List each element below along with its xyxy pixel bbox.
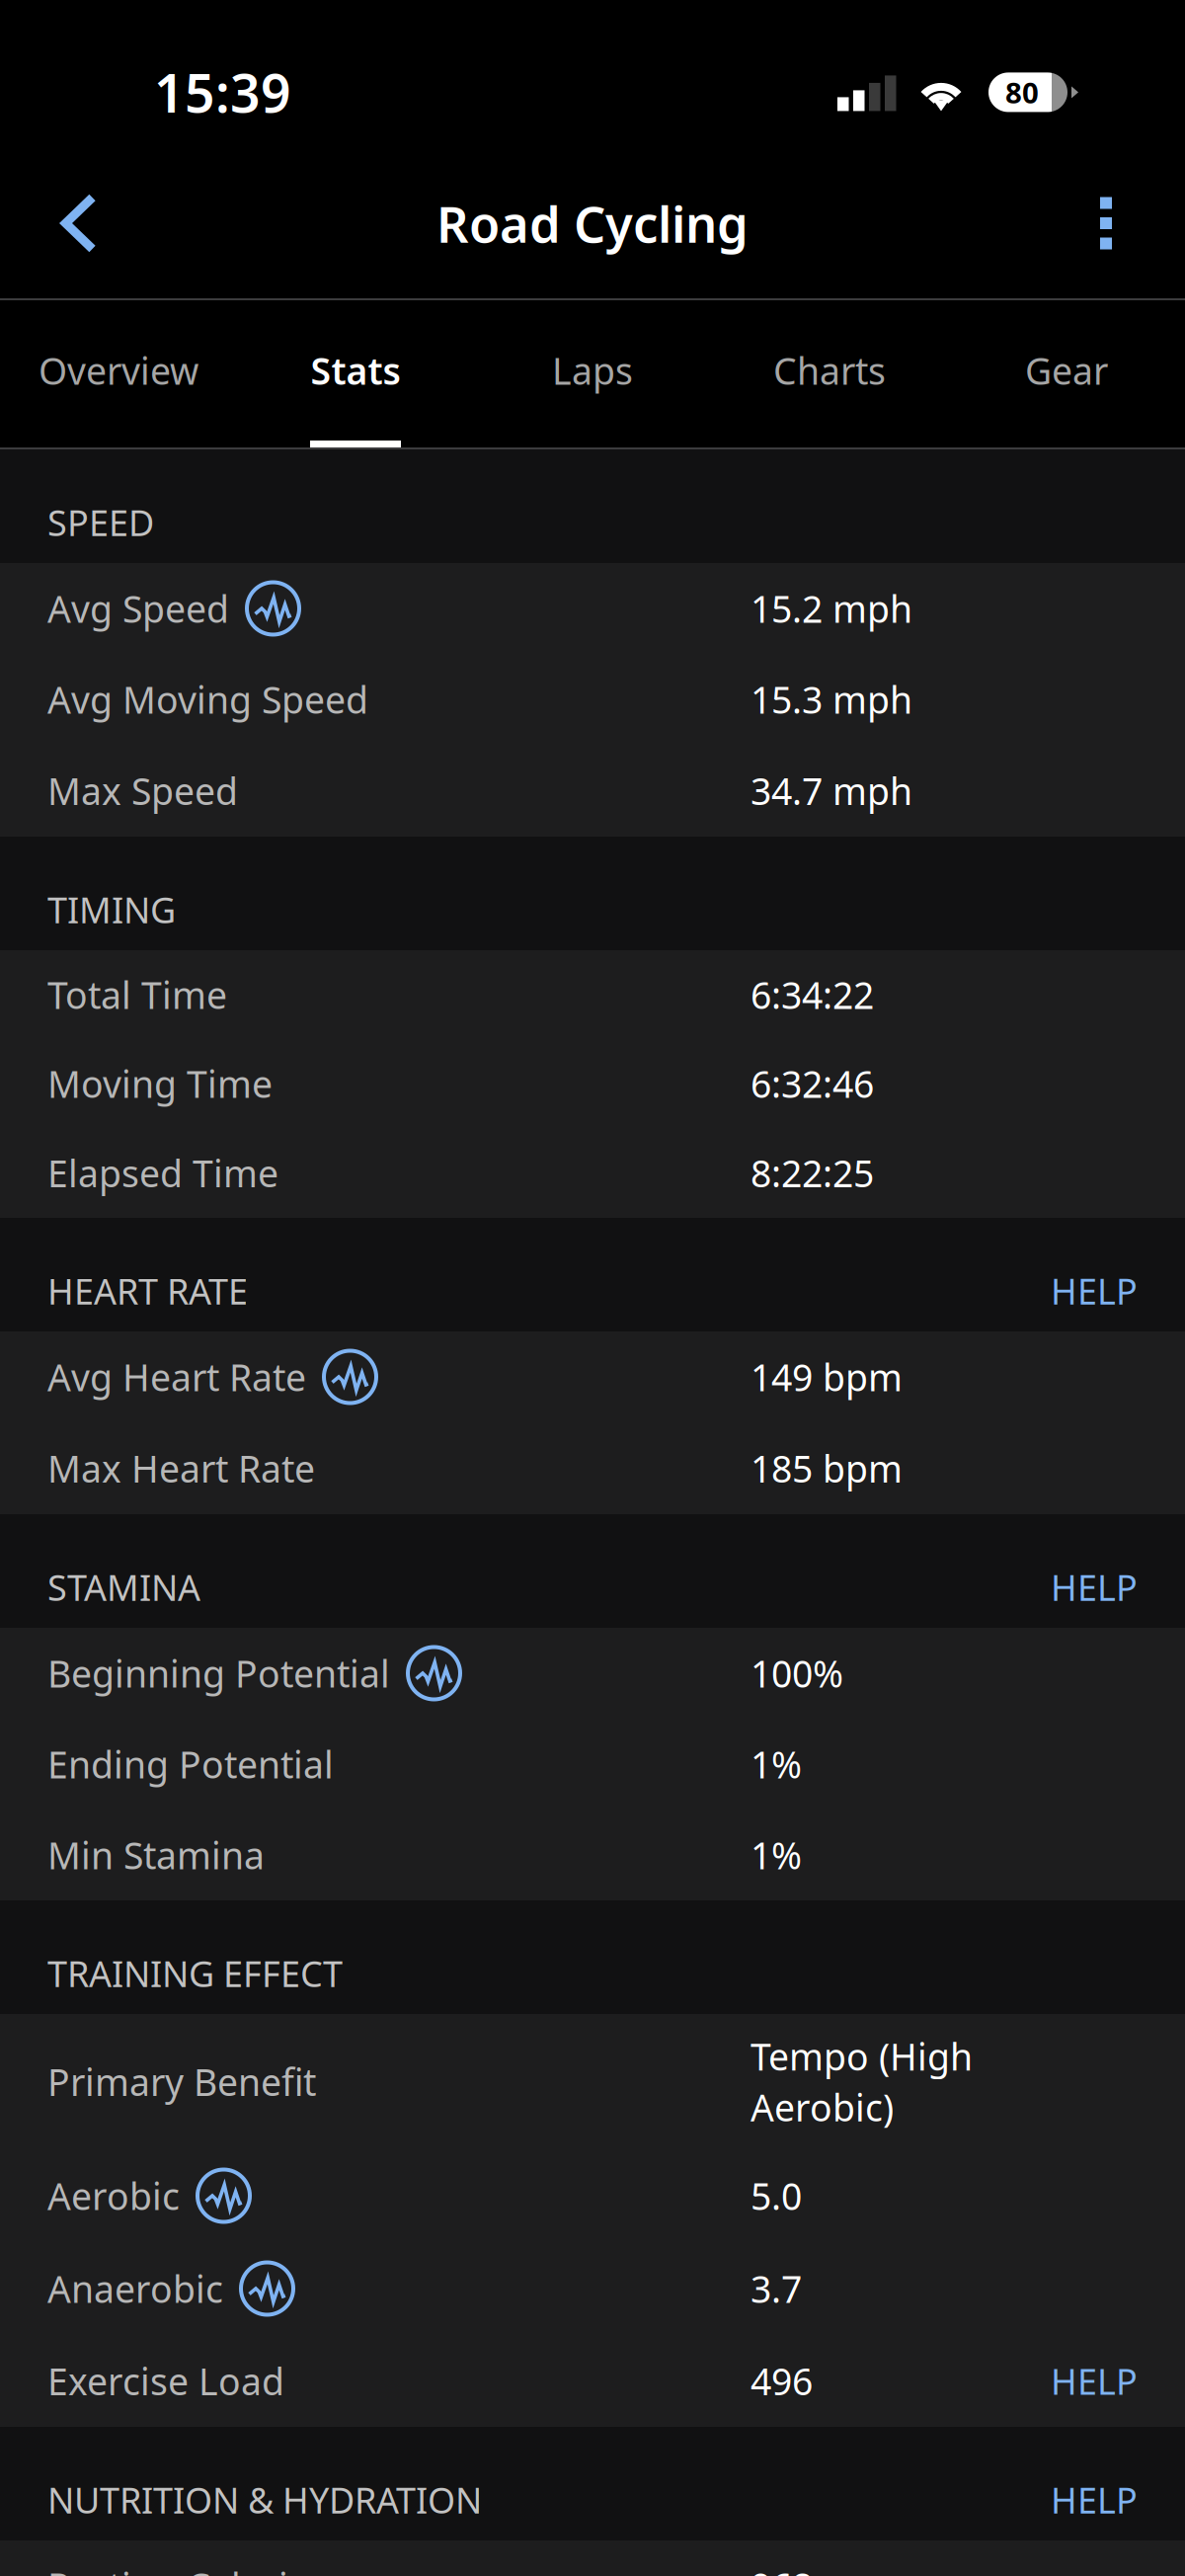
staticText: Total Time	[47, 970, 227, 1019]
button[interactable]: Resting Calories	[0, 2540, 1185, 2576]
staticText: NUTRITION & HYDRATION	[47, 2476, 482, 2523]
staticText: Charts	[773, 346, 886, 395]
staticText: Exercise Load	[47, 2356, 284, 2405]
staticText: HEART RATE	[47, 1267, 248, 1314]
button[interactable]: Back	[20, 164, 138, 282]
button[interactable]: Min Stamina	[0, 1810, 1185, 1900]
staticText: 1%	[750, 1740, 802, 1789]
button[interactable]: Laps	[474, 300, 711, 447]
staticText: HELP	[1051, 2357, 1138, 2405]
staticText: 34.7 mph	[750, 766, 912, 815]
staticText: Laps	[552, 346, 633, 395]
button[interactable]: Primary Benefit	[0, 2014, 1185, 2149]
staticText: 6:32:46	[750, 1059, 874, 1108]
button[interactable]: Avg Speed	[0, 563, 1185, 654]
staticText: Aerobic)	[750, 2083, 894, 2132]
staticText: Aerobic	[47, 2171, 180, 2220]
staticText: TRAINING EFFECT	[47, 1950, 343, 1997]
button[interactable]: Anaerobic	[0, 2242, 1185, 2335]
staticText: 3.7	[750, 2264, 802, 2313]
button[interactable]: Avg Moving Speed	[0, 654, 1185, 745]
staticText: Max Heart Rate	[47, 1444, 315, 1493]
staticText: 15.2 mph	[750, 584, 912, 633]
staticText: 100%	[750, 1649, 843, 1698]
button[interactable]: Max Speed	[0, 745, 1185, 837]
button[interactable]: HELP	[1051, 1267, 1138, 1314]
staticText: Avg Moving Speed	[47, 675, 368, 724]
staticText: 6:34:22	[750, 970, 874, 1019]
staticText: Anaerobic	[47, 2264, 223, 2313]
button[interactable]: Avg Heart Rate	[0, 1331, 1185, 1422]
staticText: Gear	[1025, 346, 1108, 395]
button[interactable]: Elapsed Time	[0, 1128, 1185, 1218]
staticText: 1%	[750, 1830, 802, 1879]
button[interactable]: Max Heart Rate	[0, 1422, 1185, 1514]
staticText: 5.0	[750, 2171, 802, 2220]
staticText: Ending Potential	[47, 1740, 334, 1789]
button[interactable]: Aerobic	[0, 2149, 1185, 2242]
staticText: Stats	[311, 346, 400, 395]
button[interactable]: Total Time	[0, 950, 1185, 1039]
staticText: 149 bpm	[750, 1352, 903, 1401]
button[interactable]: Beginning Potential	[0, 1628, 1185, 1719]
button[interactable]: Gear	[948, 300, 1185, 447]
staticText: SPEED	[47, 499, 154, 546]
staticText: Avg Heart Rate	[47, 1352, 306, 1401]
button[interactable]: HELP	[1051, 2476, 1138, 2523]
button[interactable]: Ending Potential	[0, 1719, 1185, 1810]
staticText: Avg Speed	[47, 584, 229, 633]
staticText: 8:22:25	[750, 1148, 874, 1197]
staticText: Min Stamina	[47, 1830, 265, 1879]
button[interactable]: HELP	[1051, 1564, 1138, 1611]
button[interactable]: Moving Time	[0, 1039, 1185, 1128]
button[interactable]: Exercise Load	[0, 2335, 1185, 2427]
staticText: Road Cycling	[436, 190, 749, 257]
staticText: HELP	[1051, 1267, 1138, 1314]
staticText: TIMING	[47, 886, 176, 933]
button[interactable]: Charts	[711, 300, 948, 447]
staticText: Tempo (High	[750, 2032, 973, 2081]
staticText: Overview	[39, 346, 198, 395]
staticText: 15.3 mph	[750, 675, 912, 724]
button[interactable]: Overview	[0, 300, 237, 447]
staticText: HELP	[1051, 1564, 1138, 1611]
staticText: Elapsed Time	[47, 1148, 278, 1197]
button[interactable]: More options	[1047, 164, 1165, 282]
staticText: 496	[750, 2356, 813, 2405]
staticText: Beginning Potential	[47, 1649, 390, 1698]
staticText: Moving Time	[47, 1059, 273, 1108]
staticText: 15:39	[154, 57, 291, 127]
staticText: 185 bpm	[750, 1444, 903, 1493]
staticText: STAMINA	[47, 1564, 200, 1611]
staticText: HELP	[1051, 2476, 1138, 2523]
staticText: Resting Calories	[47, 2561, 327, 2576]
staticText: 80	[1005, 73, 1039, 112]
staticText: Primary Benefit	[47, 2057, 316, 2106]
staticText: Max Speed	[47, 766, 238, 815]
staticText: 968	[750, 2561, 813, 2576]
button[interactable]: Stats	[237, 300, 474, 447]
